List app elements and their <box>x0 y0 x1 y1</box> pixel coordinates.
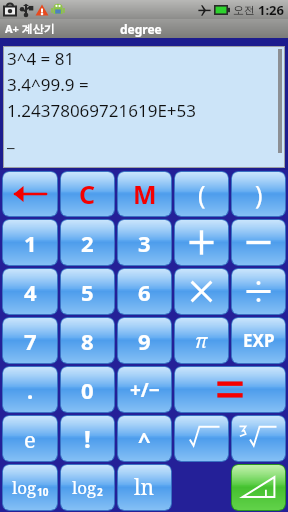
staticText: π <box>195 328 208 354</box>
button[interactable]: Graph <box>232 465 285 510</box>
staticText: log <box>72 476 97 499</box>
button[interactable]: ) <box>232 172 285 216</box>
staticText: 3.4^99.9 = <box>7 73 89 96</box>
staticText: EXP <box>243 329 275 352</box>
staticText: degree <box>120 21 162 37</box>
staticText: C <box>79 177 96 211</box>
button[interactable]: 0 <box>61 367 114 412</box>
staticText: 3 <box>138 228 151 258</box>
staticText: +/− <box>130 377 160 403</box>
button[interactable]: Square root <box>175 416 228 461</box>
staticText: ln <box>134 473 155 502</box>
button[interactable]: 5 <box>61 269 114 314</box>
button[interactable]: Plus <box>175 220 228 265</box>
button[interactable]: 7 <box>3 318 57 363</box>
staticText: log <box>12 476 37 499</box>
button[interactable]: Equals <box>175 367 285 412</box>
button[interactable]: Multiply <box>175 269 228 314</box>
staticText: ! <box>84 422 91 455</box>
button[interactable]: Divide <box>232 269 285 314</box>
button[interactable]: Log base 2 <box>61 465 114 510</box>
staticText: ^ <box>138 424 151 454</box>
button[interactable]: 6 <box>118 269 171 314</box>
staticText: 8 <box>81 326 94 356</box>
staticText: M <box>133 177 157 211</box>
button[interactable]: . <box>3 367 57 412</box>
button[interactable]: 3 <box>118 220 171 265</box>
staticText: A+ 계산기 <box>5 21 55 36</box>
button[interactable]: C <box>61 172 114 216</box>
button[interactable]: Log base 10 <box>3 465 57 510</box>
staticText: 2 <box>81 228 94 258</box>
button[interactable]: 2 <box>61 220 114 265</box>
button[interactable]: EXP <box>232 318 285 363</box>
button[interactable]: Minus <box>232 220 285 265</box>
staticText: 7 <box>24 326 37 356</box>
button[interactable]: +/− <box>118 367 171 412</box>
button[interactable]: π <box>175 318 228 363</box>
button[interactable]: 1 <box>3 220 57 265</box>
staticText: 10 <box>37 485 49 499</box>
staticText: _ <box>7 129 15 152</box>
button[interactable]: e <box>3 416 57 461</box>
button[interactable]: ( <box>175 172 228 216</box>
button[interactable]: Backspace <box>3 172 57 216</box>
staticText: 1 <box>24 228 37 258</box>
button[interactable]: ln <box>118 465 171 510</box>
staticText: ( <box>198 177 206 211</box>
staticText: 오전 <box>233 3 255 17</box>
staticText: 2 <box>97 485 103 499</box>
staticText: 9 <box>138 326 151 356</box>
staticText: 1:26 <box>258 1 284 19</box>
button[interactable]: Cube root <box>232 416 285 461</box>
staticText: 0 <box>81 375 94 405</box>
staticText: 4 <box>24 277 37 307</box>
button[interactable]: 9 <box>118 318 171 363</box>
staticText: 1.24378069721619E+53 <box>7 99 197 122</box>
staticText: 3^4 = 81 <box>7 47 75 70</box>
staticText: ) <box>255 177 263 211</box>
button[interactable]: ! <box>61 416 114 461</box>
staticText: 6 <box>138 277 151 307</box>
button[interactable]: 4 <box>3 269 57 314</box>
button[interactable]: 8 <box>61 318 114 363</box>
button[interactable]: M <box>118 172 171 216</box>
staticText: e <box>24 424 36 454</box>
staticText: . <box>27 375 34 405</box>
staticText: 5 <box>81 277 94 307</box>
button[interactable]: ^ <box>118 416 171 461</box>
